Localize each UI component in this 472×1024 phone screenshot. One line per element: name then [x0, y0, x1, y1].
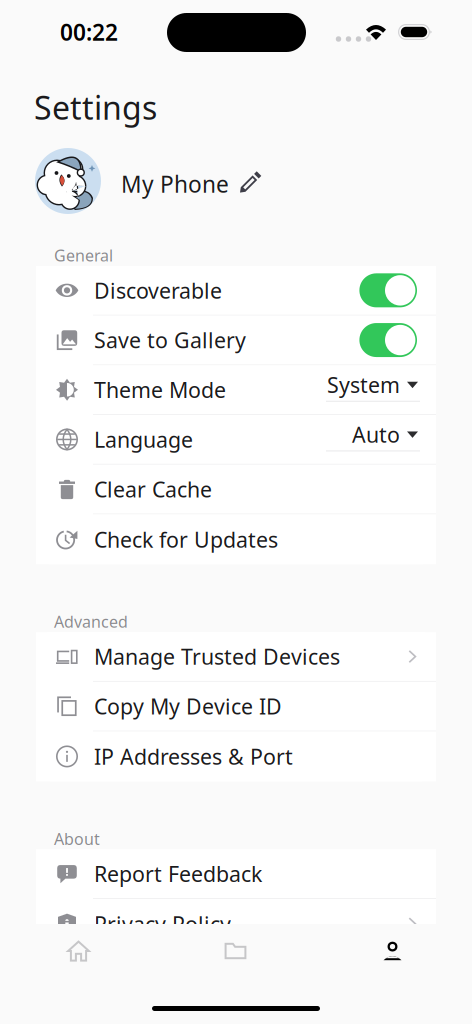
button[interactable]: Privacy Policy [36, 899, 436, 949]
staticText: System [327, 371, 400, 399]
button[interactable]: Theme Mode [36, 365, 436, 414]
staticText: My Phone [121, 169, 229, 199]
staticText: Theme Mode [94, 376, 226, 404]
button[interactable]: Language [36, 415, 436, 464]
staticText: Save to Gallery [94, 326, 246, 354]
button[interactable]: Save to Gallery [36, 316, 436, 364]
staticText: Language [94, 425, 193, 454]
staticText: Settings [34, 86, 157, 128]
button[interactable]: Discoverable [36, 266, 436, 315]
button[interactable]: Clear Cache [36, 465, 436, 513]
staticText: Clear Cache [94, 475, 212, 503]
staticText: About [54, 828, 100, 849]
button[interactable]: Files [157, 924, 314, 978]
staticText: Auto [352, 420, 400, 449]
staticText: Report Feedback [94, 859, 262, 888]
staticText: Discoverable [94, 276, 222, 304]
staticText: Manage Trusted Devices [94, 642, 340, 671]
staticText: Advanced [54, 611, 128, 632]
staticText: IP Addresses & Port [94, 742, 293, 771]
button[interactable]: Check for Updates [36, 514, 436, 564]
staticText: 00:22 [60, 17, 118, 47]
button[interactable]: Edit device name [236, 167, 266, 197]
button[interactable]: Manage Trusted Devices [36, 632, 436, 681]
button[interactable]: IP Addresses & Port [36, 732, 436, 781]
staticText: Copy My Device ID [94, 692, 282, 720]
staticText: Privacy Policy [94, 910, 231, 938]
button[interactable]: Profile [314, 924, 471, 978]
staticText: Check for Updates [94, 525, 278, 553]
button[interactable]: Report Feedback [36, 849, 436, 898]
button[interactable]: Copy My Device ID [36, 682, 436, 731]
button[interactable]: Home [0, 924, 157, 978]
staticText: General [54, 245, 113, 266]
